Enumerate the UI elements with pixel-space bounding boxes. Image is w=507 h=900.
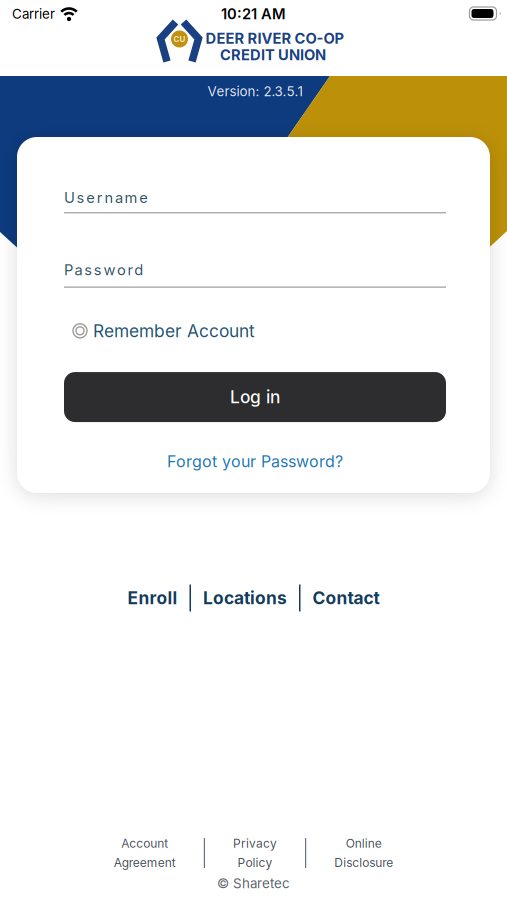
button[interactable]: Enroll: [127, 588, 177, 608]
staticText: Online: [346, 836, 382, 850]
staticText: Forgot your Password?: [167, 452, 343, 471]
staticText: CU: [173, 34, 185, 44]
button[interactable]: Log in: [64, 372, 446, 422]
staticText: Log in: [230, 387, 280, 407]
button[interactable]: Locations: [203, 588, 287, 608]
staticText: 10:21 AM: [221, 5, 286, 23]
button[interactable]: Online: [334, 836, 393, 870]
button[interactable]: Forgot your Password?: [167, 452, 343, 471]
staticText: Enroll: [127, 588, 177, 608]
staticText: Contact: [312, 588, 379, 608]
button[interactable]: Privacy: [233, 836, 277, 870]
staticText: Username: [64, 189, 148, 206]
staticText: DEER RIVER CO-OP: [205, 30, 344, 47]
staticText: Carrier: [12, 6, 55, 22]
staticText: Password: [64, 261, 143, 279]
button[interactable]: Contact: [312, 588, 379, 608]
button[interactable]: Remember Account: [64, 321, 255, 341]
staticText: Locations: [203, 588, 287, 608]
button[interactable]: Account: [114, 836, 176, 870]
staticText: Account: [121, 836, 168, 850]
staticText: Agreement: [114, 855, 176, 870]
staticText: © Sharetec: [217, 876, 290, 891]
staticText: Disclosure: [334, 855, 393, 870]
staticText: Privacy: [233, 836, 277, 850]
staticText: Version: 2.3.5.1: [207, 84, 302, 99]
staticText: CREDIT UNION: [220, 46, 326, 64]
button[interactable]: Username: [64, 189, 446, 213]
staticText: Remember Account: [93, 321, 255, 341]
button[interactable]: Password: [64, 261, 446, 288]
staticText: Policy: [237, 855, 272, 870]
